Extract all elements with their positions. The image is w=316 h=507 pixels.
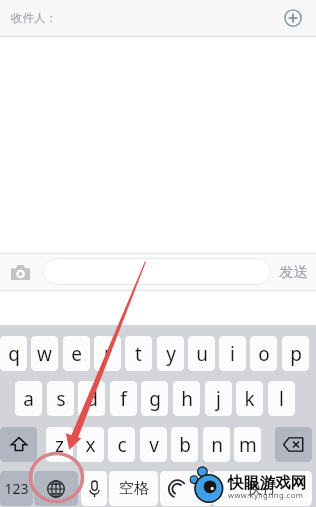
staticText: s — [56, 386, 66, 412]
staticText: 空格 — [119, 479, 149, 498]
button[interactable]: 发送 — [271, 256, 315, 288]
button[interactable]: a — [15, 381, 42, 416]
staticText: d — [86, 386, 98, 412]
button[interactable]: x — [77, 427, 104, 462]
staticText: e — [71, 341, 82, 367]
button[interactable]: o — [250, 336, 277, 371]
staticText: x — [85, 432, 96, 458]
button[interactable]: v — [140, 427, 167, 462]
button[interactable]: c — [108, 427, 135, 462]
staticText: y — [166, 341, 176, 367]
button[interactable]: k — [236, 381, 263, 416]
button[interactable]: Emoji — [160, 471, 212, 506]
staticText: 发送 — [279, 263, 308, 281]
button[interactable]: u — [188, 336, 215, 371]
button[interactable]: 123 — [0, 471, 33, 506]
staticText: r — [104, 341, 112, 367]
button[interactable]: Camera — [8, 260, 32, 284]
staticText: w — [37, 341, 52, 367]
button[interactable]: Add recipient — [284, 9, 302, 27]
button[interactable]: l — [268, 381, 295, 416]
staticText: www.kyiigting.com — [228, 490, 304, 500]
button[interactable]: Switch keyboard language — [34, 471, 78, 506]
staticText: n — [211, 432, 223, 458]
staticText: 快眼游戏网 — [228, 473, 307, 493]
button[interactable]: p — [282, 336, 309, 371]
staticText: g — [149, 386, 161, 412]
button[interactable]: Backspace — [275, 427, 312, 462]
staticText: i — [230, 341, 235, 367]
staticText: o — [258, 341, 270, 367]
staticText: j — [216, 386, 221, 412]
button[interactable]: i — [219, 336, 246, 371]
button[interactable]: g — [141, 381, 168, 416]
button[interactable]: z — [46, 427, 73, 462]
staticText: 123 — [4, 479, 29, 498]
button[interactable]: e — [63, 336, 90, 371]
button[interactable]: f — [110, 381, 137, 416]
staticText: v — [149, 432, 159, 458]
button[interactable]: 收件人： — [0, 0, 316, 36]
button[interactable]: n — [203, 427, 230, 462]
staticText: b — [179, 432, 191, 458]
staticText: f — [120, 386, 127, 412]
staticText: c — [117, 432, 127, 458]
button[interactable] — [43, 258, 271, 285]
button[interactable]: 空格 — [109, 471, 158, 506]
staticText: 换行 — [247, 479, 277, 498]
staticText: a — [23, 386, 34, 412]
button[interactable]: 换行 — [212, 471, 312, 506]
staticText: k — [244, 386, 255, 412]
staticText: t — [135, 341, 142, 367]
staticText: h — [181, 386, 193, 412]
button[interactable]: w — [31, 336, 58, 371]
staticText: u — [196, 341, 208, 367]
button[interactable]: q — [0, 336, 27, 371]
button[interactable]: t — [125, 336, 152, 371]
button[interactable]: h — [173, 381, 200, 416]
button[interactable]: s — [47, 381, 74, 416]
button[interactable]: j — [205, 381, 232, 416]
button[interactable]: m — [234, 427, 261, 462]
button[interactable]: d — [78, 381, 105, 416]
button[interactable]: Voice input — [81, 471, 107, 506]
staticText: q — [8, 341, 20, 367]
staticText: l — [279, 386, 284, 412]
staticText: z — [55, 432, 64, 458]
button[interactable]: y — [157, 336, 184, 371]
staticText: 收件人： — [11, 11, 57, 25]
button[interactable]: b — [171, 427, 198, 462]
button[interactable]: Shift — [0, 427, 37, 462]
staticText: m — [239, 432, 257, 458]
staticText: p — [290, 341, 302, 367]
button[interactable]: r — [94, 336, 121, 371]
